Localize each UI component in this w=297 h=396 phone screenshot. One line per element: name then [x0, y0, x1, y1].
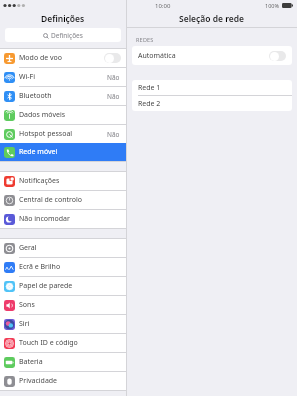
staticText: Ecrã e Brilho — [19, 262, 61, 272]
button[interactable]: Wi-Fi — [0, 68, 126, 86]
staticText: Papel de parede — [19, 281, 73, 291]
staticText: Central de controlo — [19, 195, 83, 205]
staticText: Touch ID e código — [19, 338, 78, 348]
staticText: 100% — [265, 2, 280, 9]
staticText: Não — [107, 92, 120, 101]
staticText: Sons — [19, 300, 35, 310]
staticText: Bateria — [19, 357, 43, 367]
staticText: Wi-Fi — [19, 72, 36, 82]
button[interactable]: Definições — [5, 28, 121, 42]
button[interactable]: Dados móveis — [0, 106, 126, 124]
button[interactable]: Automática — [132, 46, 292, 65]
button[interactable]: Não incomodar — [0, 210, 126, 228]
staticText: Não — [107, 73, 120, 82]
staticText: Notificações — [19, 176, 60, 186]
button[interactable]: Bateria — [0, 353, 126, 371]
button[interactable]: Papel de parede — [0, 277, 126, 295]
staticText: Definições — [51, 31, 83, 40]
staticText: Siri — [19, 319, 30, 329]
button[interactable]: Rede móvel — [0, 143, 126, 161]
button[interactable]: Geral — [0, 239, 126, 257]
button[interactable]: Rede 2 — [132, 96, 292, 111]
staticText: Bluetooth — [19, 91, 52, 101]
staticText: Dados móveis — [19, 110, 66, 120]
button[interactable]: Touch ID e código — [0, 334, 126, 352]
button[interactable]: Bluetooth — [0, 87, 126, 105]
button[interactable]: Notificações — [0, 172, 126, 190]
staticText: Seleção de rede — [179, 13, 245, 25]
staticText: Hotspot pessoal — [19, 129, 73, 139]
button[interactable]: Central de controlo — [0, 191, 126, 209]
staticText: Automática — [138, 51, 176, 61]
staticText: Geral — [19, 243, 37, 253]
button[interactable]: Ecrã e Brilho — [0, 258, 126, 276]
button[interactable]: Rede 1 — [132, 80, 292, 95]
button[interactable]: Privacidade — [0, 372, 126, 390]
staticText: Modo de voo — [19, 53, 63, 63]
staticText: Rede 1 — [138, 83, 161, 93]
staticText: Rede móvel — [19, 147, 58, 157]
button[interactable]: Modo de voo — [0, 49, 126, 67]
button[interactable]: Hotspot pessoal — [0, 125, 126, 143]
button[interactable]: Alternar — [269, 51, 286, 61]
staticText: Definições — [41, 13, 85, 25]
staticText: Não incomodar — [19, 214, 70, 224]
staticText: Não — [107, 130, 120, 139]
staticText: Rede 2 — [138, 99, 161, 109]
button[interactable]: Siri — [0, 315, 126, 333]
staticText: Privacidade — [19, 376, 58, 386]
button[interactable]: Sons — [0, 296, 126, 314]
staticText: REDES — [136, 36, 154, 43]
staticText: 10:00 — [155, 2, 171, 10]
button[interactable]: Alternar — [104, 53, 121, 63]
